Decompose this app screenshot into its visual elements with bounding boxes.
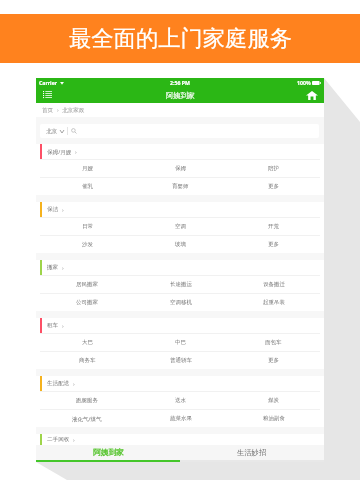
staticText: 粮油副食 — [263, 415, 285, 422]
staticText: 北京 — [46, 128, 58, 135]
button[interactable]: 催乳 — [40, 178, 134, 195]
staticText: 月嫂 — [82, 165, 93, 172]
button[interactable]: 商务车 — [40, 352, 134, 369]
staticText: 更多 — [268, 183, 279, 190]
staticText: › — [73, 380, 75, 388]
staticText: 送水 — [175, 397, 186, 404]
staticText: 设备搬迁 — [263, 281, 285, 288]
staticText: 催乳 — [82, 183, 93, 190]
button[interactable]: 普通轿车 — [134, 352, 227, 369]
staticText: 更多 — [268, 357, 279, 364]
staticText: 商务车 — [79, 357, 96, 364]
button[interactable]: 月嫂 — [40, 160, 134, 177]
button[interactable]: 居民搬家 — [40, 276, 134, 293]
button[interactable]: 起重吊装 — [227, 294, 320, 311]
staticText: 玻璃 — [175, 241, 186, 248]
button[interactable]: 二手回收 — [36, 434, 324, 445]
staticText: 蔬菜水果 — [170, 415, 192, 422]
button[interactable]: 更多 — [227, 236, 320, 253]
staticText: › — [73, 436, 75, 444]
staticText: 起重吊装 — [263, 299, 285, 306]
button[interactable]: 保姆/月嫂 — [36, 144, 324, 159]
button[interactable]: 公司搬家 — [40, 294, 134, 311]
button[interactable]: 空调 — [134, 218, 227, 235]
button[interactable]: 蔬菜水果 — [134, 410, 227, 427]
staticText: 煤炭 — [268, 397, 279, 404]
staticText: 100% — [297, 79, 311, 86]
staticText: 普通轿车 — [170, 357, 192, 364]
staticText: 中巴 — [175, 339, 186, 346]
button[interactable]: 搬家 — [36, 260, 324, 275]
staticText: 公司搬家 — [76, 299, 98, 306]
staticText: 液化气/煤气 — [72, 415, 102, 423]
staticText: 面包车 — [265, 339, 282, 346]
staticText: 二手回收 — [47, 436, 70, 443]
staticText: 陪护 — [268, 165, 279, 172]
button[interactable]: 更多 — [227, 352, 320, 369]
staticText: › — [62, 322, 64, 330]
staticText: 空调移机 — [170, 299, 192, 306]
button[interactable]: 租车 — [36, 318, 324, 333]
button[interactable]: 粮油副食 — [227, 410, 320, 427]
button[interactable]: 跑腿服务 — [40, 392, 134, 409]
button[interactable]: Menu — [42, 90, 52, 100]
staticText: 生活配送 — [47, 380, 70, 387]
staticText: 育婴师 — [172, 183, 189, 190]
staticText: Carrier — [39, 79, 58, 86]
button[interactable]: 开荒 — [227, 218, 320, 235]
button[interactable]: 生活妙招 — [180, 445, 324, 460]
staticText: 搬家 — [47, 264, 59, 271]
button[interactable]: 日常 — [40, 218, 134, 235]
button[interactable]: 煤炭 — [227, 392, 320, 409]
staticText: 保姆/月嫂 — [47, 148, 72, 156]
button[interactable]: 保姆 — [134, 160, 227, 177]
staticText: 最全面的上门家庭服务 — [69, 25, 292, 53]
button[interactable]: 生活配送 — [36, 376, 324, 391]
staticText: 更多 — [268, 241, 279, 248]
button[interactable]: 送水 — [134, 392, 227, 409]
button[interactable]: 玻璃 — [134, 236, 227, 253]
button[interactable]: 陪护 — [227, 160, 320, 177]
button[interactable]: 阿姨到家 — [36, 445, 180, 460]
button[interactable]: 保洁 — [36, 202, 324, 217]
staticText: 租车 — [47, 322, 59, 329]
staticText: 生活妙招 — [237, 448, 267, 457]
staticText: 2:56 PM — [170, 79, 190, 86]
button[interactable]: 液化气/煤气 — [40, 410, 134, 427]
button[interactable]: 育婴师 — [134, 178, 227, 195]
staticText: 阿姨到家 — [166, 91, 195, 100]
button[interactable]: 面包车 — [227, 334, 320, 351]
staticText: 首页 — [42, 107, 54, 114]
staticText: 大巴 — [82, 339, 93, 346]
button[interactable]: 设备搬迁 — [227, 276, 320, 293]
button[interactable]: 更多 — [227, 178, 320, 195]
button[interactable]: Home — [306, 89, 318, 101]
staticText: › — [62, 206, 64, 214]
staticText: 开荒 — [268, 223, 279, 230]
staticText: › — [75, 148, 77, 156]
staticText: 跑腿服务 — [76, 397, 98, 404]
staticText: 长途搬运 — [170, 281, 192, 288]
staticText: 保洁 — [47, 206, 59, 213]
button[interactable]: 沙发 — [40, 236, 134, 253]
button[interactable]: 北京 — [40, 124, 319, 138]
staticText: 阿姨到家 — [93, 448, 124, 458]
staticText: 日常 — [82, 223, 93, 230]
staticText: 居民搬家 — [76, 281, 98, 288]
button[interactable]: 大巴 — [40, 334, 134, 351]
button[interactable]: 长途搬运 — [134, 276, 227, 293]
staticText: 北京家政 — [62, 107, 85, 114]
button[interactable]: 中巴 — [134, 334, 227, 351]
staticText: › — [62, 264, 64, 272]
staticText: 空调 — [175, 223, 186, 230]
staticText: 沙发 — [82, 241, 93, 248]
staticText: 保姆 — [175, 165, 186, 172]
staticText: › — [54, 106, 62, 114]
button[interactable]: 空调移机 — [134, 294, 227, 311]
